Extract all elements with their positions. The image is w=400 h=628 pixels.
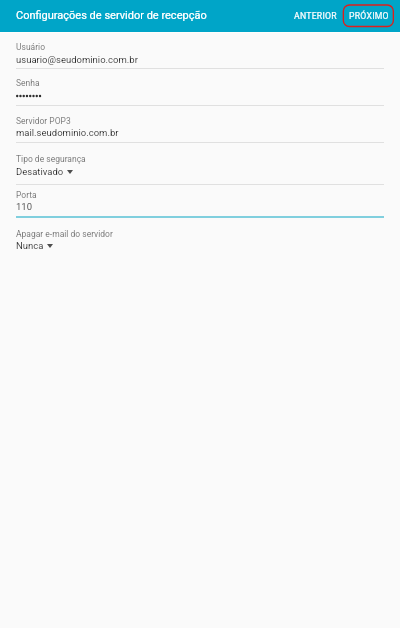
staticText: Usuário — [16, 42, 46, 52]
staticText: PRÓXIMO — [349, 11, 389, 21]
staticText: mail.seudominio.com.br — [16, 127, 119, 138]
staticText: Desativado — [16, 166, 64, 177]
staticText: Apagar e-mail do servidor — [16, 229, 113, 239]
staticText: Tipo de segurança — [16, 154, 86, 164]
staticText: Porta — [16, 190, 37, 200]
button[interactable]: PRÓXIMO — [343, 4, 394, 26]
staticText: Servidor POP3 — [16, 116, 71, 126]
staticText: ANTERIOR — [294, 11, 337, 21]
staticText: 110 — [16, 201, 33, 212]
staticText: Configurações de servidor de recepção — [16, 9, 207, 22]
staticText: usuario@seudominio.com.br — [16, 54, 138, 65]
button[interactable]: ANTERIOR — [286, 4, 342, 26]
staticText: Nunca — [16, 240, 44, 251]
staticText: Senha — [16, 78, 40, 88]
